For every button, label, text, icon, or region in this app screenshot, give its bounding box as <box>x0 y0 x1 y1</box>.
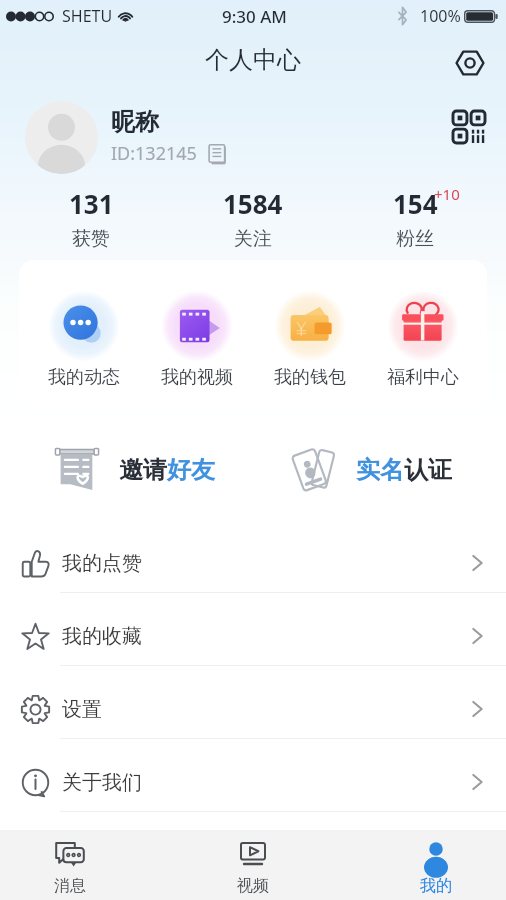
staticText: 设置 <box>62 697 102 722</box>
staticText: 邀请好友 <box>119 455 215 485</box>
staticText: +10 <box>434 184 460 204</box>
staticText: 福利中心 <box>387 366 459 389</box>
staticText: 我的点赞 <box>62 551 142 576</box>
staticText: SHETU <box>62 5 113 27</box>
button[interactable]: 实名认证 <box>256 436 487 503</box>
staticText: 昵称 <box>111 107 159 137</box>
button[interactable]: 我的收藏 <box>0 593 506 666</box>
staticText: 消息 <box>54 876 86 896</box>
button[interactable]: 131 <box>10 186 172 256</box>
button[interactable] <box>25 101 98 174</box>
button[interactable]: 消息 <box>15 830 125 900</box>
button[interactable]: Copy ID <box>207 143 228 164</box>
staticText: 视频 <box>237 876 269 896</box>
button[interactable]: 邀请好友 <box>19 436 250 503</box>
button[interactable]: 我的动态 <box>27 260 140 408</box>
staticText: 我的视频 <box>161 366 233 389</box>
staticText: 我的 <box>420 876 452 896</box>
staticText: 131 <box>69 186 114 221</box>
button[interactable]: 福利中心 <box>366 260 479 408</box>
staticText: 实名认证 <box>356 455 452 485</box>
staticText: 获赞 <box>72 227 110 251</box>
staticText: 关注 <box>234 227 272 251</box>
staticText: 154 <box>393 186 438 221</box>
staticText: 我的钱包 <box>274 366 346 389</box>
button[interactable]: 我的 <box>381 830 491 900</box>
button[interactable]: 154 <box>334 186 496 256</box>
button[interactable]: 我的视频 <box>140 260 253 408</box>
button[interactable]: 我的钱包 <box>253 260 366 408</box>
button[interactable]: Settings <box>451 44 489 82</box>
staticText: 100% <box>420 5 461 27</box>
button[interactable]: 我的点赞 <box>0 520 506 593</box>
staticText: 个人中心 <box>205 45 301 75</box>
staticText: 我的收藏 <box>62 624 142 649</box>
button[interactable]: 1584 <box>172 186 334 256</box>
staticText: 粉丝 <box>396 227 434 251</box>
staticText: 我的动态 <box>48 366 120 389</box>
staticText: 1584 <box>223 186 283 221</box>
button[interactable]: 关于我们 <box>0 739 506 812</box>
button[interactable]: 视频 <box>198 830 308 900</box>
staticText: 9:30 AM <box>222 5 287 28</box>
staticText: ID:132145 <box>111 141 197 166</box>
staticText: 关于我们 <box>62 770 142 795</box>
button[interactable]: QR code <box>450 108 488 146</box>
button[interactable]: 设置 <box>0 666 506 739</box>
